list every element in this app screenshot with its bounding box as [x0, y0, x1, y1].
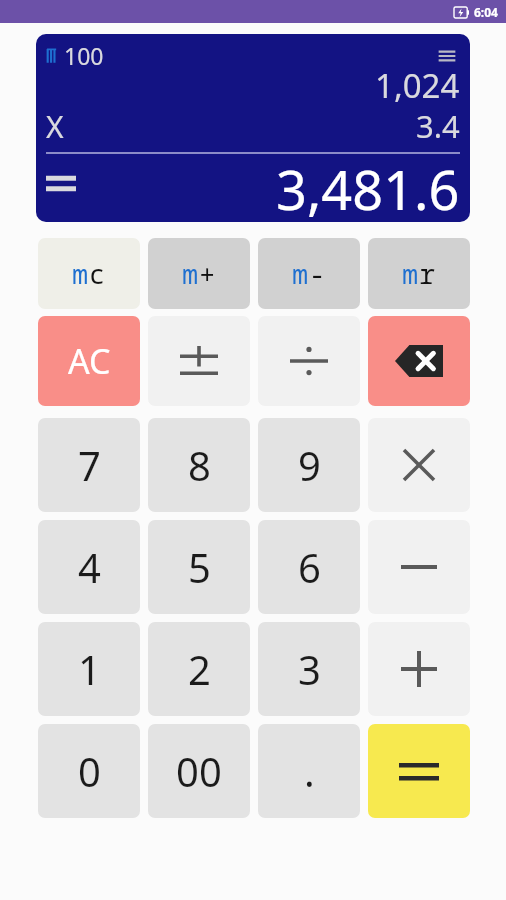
staticText: 3,481.6: [276, 152, 460, 222]
staticText: m: [182, 255, 199, 292]
staticText: 3: [298, 642, 321, 696]
staticText: 5: [188, 540, 211, 594]
staticText: m: [72, 255, 89, 292]
button[interactable]: Divide: [258, 316, 360, 406]
button[interactable]: Add: [368, 622, 470, 716]
button[interactable]: All clear: [38, 316, 140, 406]
staticText: 6:04: [474, 4, 498, 20]
button[interactable]: Equals: [368, 724, 470, 818]
button[interactable]: Menu: [436, 45, 458, 67]
staticText: 9: [298, 438, 321, 492]
button[interactable]: Plus minus: [148, 316, 250, 406]
staticText: 6: [298, 540, 321, 594]
button[interactable]: 0: [38, 724, 140, 818]
staticText: 1: [78, 642, 101, 696]
button[interactable]: Multiply: [368, 418, 470, 512]
staticText: 1,024: [375, 63, 460, 108]
staticText: 3.4: [416, 105, 460, 147]
button[interactable]: 1: [38, 622, 140, 716]
button[interactable]: 5: [148, 520, 250, 614]
staticText: c: [89, 255, 106, 292]
button[interactable]: 3: [258, 622, 360, 716]
staticText: 2: [188, 642, 211, 696]
button[interactable]: m: [38, 238, 140, 309]
button[interactable]: 7: [38, 418, 140, 512]
staticText: 100: [64, 40, 104, 71]
button[interactable]: 6: [258, 520, 360, 614]
button[interactable]: Backspace: [368, 316, 470, 406]
button[interactable]: 8: [148, 418, 250, 512]
button[interactable]: Subtract: [368, 520, 470, 614]
button[interactable]: m: [148, 238, 250, 309]
staticText: r: [419, 255, 436, 292]
staticText: AC: [68, 338, 111, 384]
staticText: m: [292, 255, 309, 292]
staticText: -: [309, 255, 326, 292]
staticText: .: [304, 744, 315, 798]
staticText: 00: [176, 744, 222, 798]
staticText: 7: [78, 438, 101, 492]
staticText: m: [402, 255, 419, 292]
button[interactable]: 4: [38, 520, 140, 614]
button[interactable]: 9: [258, 418, 360, 512]
staticText: 0: [78, 744, 101, 798]
staticText: 8: [188, 438, 211, 492]
button[interactable]: m: [368, 238, 470, 309]
staticText: 4: [78, 540, 101, 594]
button[interactable]: 00: [148, 724, 250, 818]
staticText: X: [46, 106, 64, 147]
staticText: +: [199, 255, 216, 292]
button[interactable]: 2: [148, 622, 250, 716]
button[interactable]: .: [258, 724, 360, 818]
button[interactable]: m: [258, 238, 360, 309]
